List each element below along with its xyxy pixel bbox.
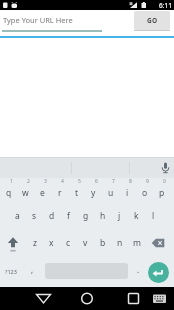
button[interactable]: s bbox=[26, 204, 43, 231]
button[interactable]: q bbox=[0, 178, 17, 204]
staticText: 4 bbox=[61, 178, 64, 185]
staticText: b bbox=[100, 237, 106, 249]
staticText: p bbox=[159, 187, 165, 199]
button[interactable]: v bbox=[77, 231, 94, 259]
staticText: w bbox=[22, 187, 29, 199]
staticText: h bbox=[100, 210, 106, 222]
staticText: y bbox=[91, 187, 96, 199]
staticText: f bbox=[67, 210, 70, 222]
button[interactable]: ?123 bbox=[0, 259, 26, 287]
button[interactable] bbox=[72, 287, 102, 310]
staticText: g bbox=[83, 210, 89, 222]
button[interactable]: , bbox=[26, 259, 43, 287]
button[interactable] bbox=[147, 259, 173, 287]
button[interactable]: . bbox=[130, 259, 147, 287]
button[interactable] bbox=[29, 287, 58, 310]
button[interactable]: c bbox=[60, 231, 77, 259]
staticText: 5 bbox=[78, 178, 81, 185]
button[interactable]: f bbox=[60, 204, 77, 231]
button[interactable]: a bbox=[9, 204, 26, 231]
button[interactable] bbox=[0, 231, 26, 259]
staticText: s bbox=[32, 210, 37, 222]
staticText: 6:11 bbox=[159, 1, 172, 10]
button[interactable]: j bbox=[111, 204, 128, 231]
staticText: r bbox=[58, 187, 62, 199]
button[interactable]: t bbox=[68, 178, 85, 204]
button[interactable] bbox=[156, 157, 174, 178]
staticText: n bbox=[117, 237, 123, 249]
staticText: c bbox=[66, 237, 71, 249]
staticText: z bbox=[33, 237, 37, 249]
button[interactable]: w bbox=[17, 178, 34, 204]
button[interactable] bbox=[119, 287, 148, 310]
staticText: d bbox=[49, 210, 55, 222]
staticText: q bbox=[6, 187, 12, 199]
staticText: Type Your URL Here bbox=[3, 15, 73, 25]
staticText: u bbox=[108, 187, 114, 199]
button[interactable] bbox=[145, 231, 171, 259]
staticText: 6 bbox=[95, 178, 98, 185]
button[interactable]: b bbox=[94, 231, 111, 259]
staticText: o bbox=[142, 187, 148, 199]
button[interactable]: r bbox=[51, 178, 68, 204]
staticText: x bbox=[49, 237, 54, 249]
button[interactable]: k bbox=[128, 204, 145, 231]
button[interactable]: u bbox=[102, 178, 119, 204]
button[interactable]: GO bbox=[134, 11, 170, 30]
staticText: 3 bbox=[44, 178, 47, 185]
staticText: 0 bbox=[163, 178, 166, 185]
staticText: a bbox=[15, 210, 20, 222]
button[interactable]: o bbox=[136, 178, 153, 204]
staticText: k bbox=[134, 210, 139, 222]
button[interactable]: x bbox=[43, 231, 60, 259]
staticText: 9 bbox=[146, 178, 149, 185]
staticText: i bbox=[126, 187, 129, 199]
staticText: e bbox=[40, 187, 45, 199]
staticText: 1 bbox=[10, 178, 13, 185]
button[interactable] bbox=[149, 287, 174, 310]
button[interactable]: Type Your URL Here bbox=[2, 12, 102, 34]
staticText: j bbox=[118, 210, 121, 222]
button[interactable] bbox=[43, 259, 130, 287]
button[interactable]: d bbox=[43, 204, 60, 231]
button[interactable]: i bbox=[119, 178, 136, 204]
button[interactable]: p bbox=[153, 178, 170, 204]
staticText: 8 bbox=[129, 178, 132, 185]
button[interactable]: y bbox=[85, 178, 102, 204]
staticText: t bbox=[75, 187, 79, 199]
staticText: GO bbox=[147, 16, 158, 25]
staticText: . bbox=[137, 264, 140, 275]
staticText: ?123 bbox=[5, 268, 17, 275]
button[interactable]: z bbox=[26, 231, 43, 259]
button[interactable]: n bbox=[111, 231, 128, 259]
button[interactable]: g bbox=[77, 204, 94, 231]
button[interactable]: h bbox=[94, 204, 111, 231]
staticText: l bbox=[152, 210, 155, 222]
button[interactable]: m bbox=[128, 231, 145, 259]
staticText: v bbox=[83, 237, 88, 249]
button[interactable]: e bbox=[34, 178, 51, 204]
staticText: 7 bbox=[112, 178, 115, 185]
staticText: 2 bbox=[27, 178, 30, 185]
button[interactable]: l bbox=[145, 204, 162, 231]
staticText: m bbox=[133, 237, 141, 249]
staticText: , bbox=[31, 264, 34, 275]
